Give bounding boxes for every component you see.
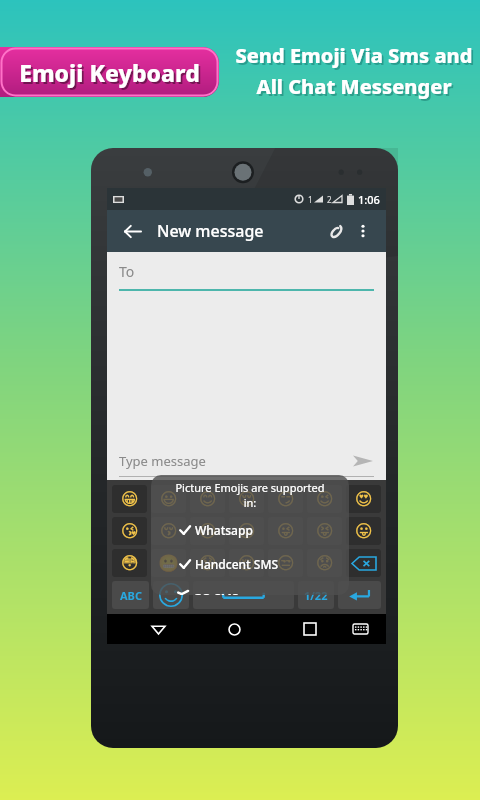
staticText: ABC	[120, 588, 142, 603]
staticText: 😌	[238, 489, 256, 509]
staticText: 😗	[199, 521, 217, 541]
staticText: All Chat Messenger	[258, 75, 454, 102]
staticText: Picture Emojis are supported in:	[171, 480, 329, 510]
button[interactable]: 😘	[112, 517, 147, 545]
staticText: Whatsapp	[195, 522, 253, 538]
staticText: 😁	[121, 489, 139, 509]
staticText: Send Emoji Via Sms and	[237, 44, 475, 71]
button[interactable]: More options	[350, 218, 376, 244]
button[interactable]: Switch keyboard	[347, 616, 373, 642]
button[interactable]	[193, 581, 294, 609]
button[interactable]: 😁	[112, 485, 147, 513]
staticText: All Chat Messenger	[256, 73, 452, 100]
staticText: 😳	[121, 553, 139, 573]
staticText: 😔	[238, 553, 256, 573]
button[interactable]: 😌	[229, 485, 264, 513]
staticText: To	[119, 262, 135, 281]
staticText: 😉	[316, 489, 334, 509]
staticText: 😜	[277, 521, 295, 541]
staticText: 😘	[121, 521, 139, 541]
staticText: Send Emoji Via Sms and	[235, 42, 473, 69]
button[interactable]: 😃	[151, 485, 186, 513]
staticText: Type message	[119, 452, 206, 470]
button[interactable]: Attach	[320, 216, 350, 246]
staticText: 😍	[355, 489, 373, 509]
staticText: 2	[327, 194, 332, 205]
button[interactable]: Recent apps	[297, 616, 323, 642]
button[interactable]: Back	[117, 216, 147, 246]
button[interactable]: 😜	[268, 517, 303, 545]
button[interactable]: Emoji Keyboard	[0, 47, 219, 97]
button[interactable]: Home	[221, 616, 247, 642]
staticText: 1/22	[304, 588, 328, 603]
staticText: New message	[157, 220, 264, 242]
staticText: Emoji Keyboard	[19, 57, 200, 88]
staticText: 😃	[160, 489, 178, 509]
staticText: 1:06	[358, 192, 380, 207]
staticText: 😊	[199, 489, 217, 509]
button[interactable]: 😛	[229, 517, 264, 545]
staticText: 😟	[316, 553, 334, 573]
button[interactable]	[153, 581, 189, 609]
button[interactable]: 😍	[346, 485, 381, 513]
staticText: 😛	[238, 521, 256, 541]
button[interactable]: 😬	[151, 549, 186, 577]
staticText: 😛	[355, 521, 373, 541]
staticText: 😝	[316, 521, 334, 541]
button[interactable]: 😝	[307, 517, 342, 545]
button[interactable]	[338, 581, 381, 609]
button[interactable]: 😒	[268, 549, 303, 577]
button[interactable]: 😞	[190, 549, 225, 577]
button[interactable]: 😛	[346, 517, 381, 545]
staticText: 😞	[199, 553, 217, 573]
button[interactable]: 1/22	[298, 581, 334, 609]
staticText: 1	[308, 194, 313, 205]
staticText: Emoji Keyboard	[21, 59, 202, 90]
button[interactable]: ABC	[112, 581, 149, 609]
button[interactable]: 😔	[229, 549, 264, 577]
button[interactable]: 😏	[268, 485, 303, 513]
button[interactable]: Send	[350, 448, 376, 474]
button[interactable]: Back	[145, 616, 171, 642]
button[interactable]: 😟	[307, 549, 342, 577]
staticText: 😬	[158, 553, 180, 573]
staticText: 😚	[160, 521, 178, 541]
staticText: 😒	[277, 553, 295, 573]
staticText: Handcent SMS	[195, 556, 279, 572]
staticText: GO SMS	[193, 590, 239, 595]
button[interactable]: 😗	[190, 517, 225, 545]
button[interactable]: 😳	[112, 549, 147, 577]
button[interactable]	[346, 549, 381, 577]
staticText: 😏	[277, 489, 295, 509]
button[interactable]: 😊	[190, 485, 225, 513]
button[interactable]: 😚	[151, 517, 186, 545]
button[interactable]: 😉	[307, 485, 342, 513]
